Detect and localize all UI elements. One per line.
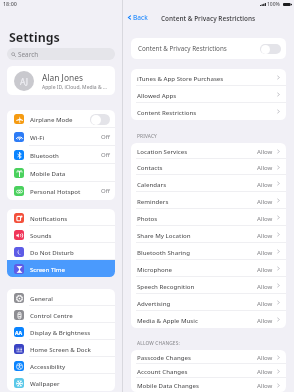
button[interactable]: General (7, 289, 115, 306)
staticText: Media & Apple Music (137, 316, 257, 324)
button[interactable]: Do Not Disturb (7, 243, 115, 260)
staticText: General (30, 294, 115, 302)
button[interactable]: Mobile Data Changes (131, 378, 286, 392)
button[interactable]: Personal Hotspot (7, 182, 115, 200)
button[interactable]: Bluetooth (7, 146, 115, 164)
staticText: Reminders (137, 197, 257, 205)
button[interactable]: Reminders (131, 192, 286, 209)
staticText: PRIVACY (137, 133, 157, 140)
staticText: Home Screen & Dock (30, 345, 115, 353)
staticText: Mobile Data (30, 169, 115, 177)
staticText: Wi-Fi (30, 133, 101, 141)
staticText: Allow (257, 282, 273, 290)
button[interactable]: Location Services (131, 143, 286, 159)
staticText: Allow (257, 381, 273, 389)
staticText: AJ (20, 76, 29, 87)
staticText: Back (133, 13, 148, 22)
button[interactable]: Screen Time (7, 260, 115, 277)
staticText: Off (101, 151, 110, 159)
button[interactable]: Wallpaper (7, 374, 115, 391)
button[interactable]: Mobile Data (7, 164, 115, 182)
staticText: Bluetooth (30, 151, 101, 159)
staticText: Sounds (30, 231, 115, 239)
staticText: Allow (257, 316, 273, 324)
staticText: Allow (257, 147, 273, 155)
button[interactable]: Sounds (7, 226, 115, 243)
staticText: Off (101, 187, 110, 195)
button[interactable]: AA (7, 323, 115, 340)
button[interactable]: Wi-Fi (7, 128, 115, 146)
staticText: Personal Hotspot (30, 187, 101, 195)
button[interactable]: Content & Privacy Restrictions (131, 38, 286, 59)
staticText: Content & Privacy Restrictions (138, 44, 227, 53)
button[interactable]: Search (7, 48, 115, 60)
staticText: Location Services (137, 147, 257, 155)
staticText: ALLOW CHANGES: (137, 340, 180, 347)
button[interactable]: Contacts (131, 159, 286, 175)
staticText: Allowed Apps (137, 91, 276, 99)
button[interactable]: AJ (7, 66, 115, 95)
staticText: Notifications (30, 214, 115, 222)
staticText: Display & Brightness (30, 328, 115, 336)
staticText: Calendars (137, 180, 257, 188)
button[interactable]: Bluetooth Sharing (131, 243, 286, 260)
button[interactable]: iTunes & App Store Purchases (131, 69, 286, 86)
button[interactable]: Back (127, 13, 148, 22)
button[interactable]: Home Screen & Dock (7, 340, 115, 357)
staticText: Allow (257, 180, 273, 188)
staticText: Microphone (137, 265, 257, 273)
staticText: Content Restrictions (137, 108, 276, 116)
staticText: Allow (257, 197, 273, 205)
staticText: AA (15, 329, 23, 336)
staticText: Screen Time (30, 265, 115, 273)
staticText: Content & Privacy Restrictions (161, 14, 256, 23)
button[interactable]: Calendars (131, 175, 286, 192)
button[interactable]: Airplane Mode (7, 110, 115, 128)
staticText: 18:00 (3, 0, 17, 7)
button[interactable]: Photos (131, 209, 286, 226)
staticText: Search (18, 50, 39, 59)
staticText: Apple ID, iCloud, Media & ... (42, 84, 107, 91)
button[interactable]: Accessibility (7, 357, 115, 374)
staticText: Speech Recognition (137, 282, 257, 290)
staticText: Account Changes (137, 367, 257, 375)
staticText: Allow (257, 248, 273, 256)
staticText: Allow (257, 299, 273, 307)
button[interactable]: Content Restrictions (131, 103, 286, 120)
staticText: Off (101, 133, 110, 141)
button[interactable]: Speech Recognition (131, 277, 286, 294)
button[interactable]: Passcode Changes (131, 350, 286, 364)
staticText: Control Centre (30, 311, 115, 319)
staticText: Share My Location (137, 231, 257, 239)
staticText: 100% (267, 1, 280, 8)
staticText: iTunes & App Store Purchases (137, 74, 276, 82)
button[interactable]: Microphone (131, 260, 286, 277)
button[interactable]: Advertising (131, 294, 286, 311)
staticText: Settings (9, 29, 60, 46)
staticText: Allow (257, 163, 273, 171)
button[interactable]: Account Changes (131, 364, 286, 378)
staticText: Allow (257, 231, 273, 239)
staticText: Wallpaper (30, 379, 115, 387)
staticText: Contacts (137, 163, 257, 171)
staticText: Allow (257, 353, 273, 361)
button[interactable]: Toggle off (90, 114, 110, 125)
button[interactable]: Notifications (7, 209, 115, 226)
button[interactable]: Share My Location (131, 226, 286, 243)
button[interactable]: Toggle off (260, 44, 281, 54)
staticText: Advertising (137, 299, 257, 307)
staticText: Allow (257, 214, 273, 222)
staticText: Bluetooth Sharing (137, 248, 257, 256)
button[interactable]: Control Centre (7, 306, 115, 323)
staticText: Photos (137, 214, 257, 222)
staticText: Allow (257, 265, 273, 273)
button[interactable]: Allowed Apps (131, 86, 286, 103)
staticText: Accessibility (30, 362, 115, 370)
button[interactable]: Media & Apple Music (131, 311, 286, 328)
staticText: Alan Jones (42, 72, 83, 83)
staticText: Airplane Mode (30, 115, 90, 123)
staticText: Allow (257, 367, 273, 375)
staticText: Passcode Changes (137, 353, 257, 361)
staticText: Do Not Disturb (30, 248, 115, 256)
staticText: Mobile Data Changes (137, 381, 257, 389)
